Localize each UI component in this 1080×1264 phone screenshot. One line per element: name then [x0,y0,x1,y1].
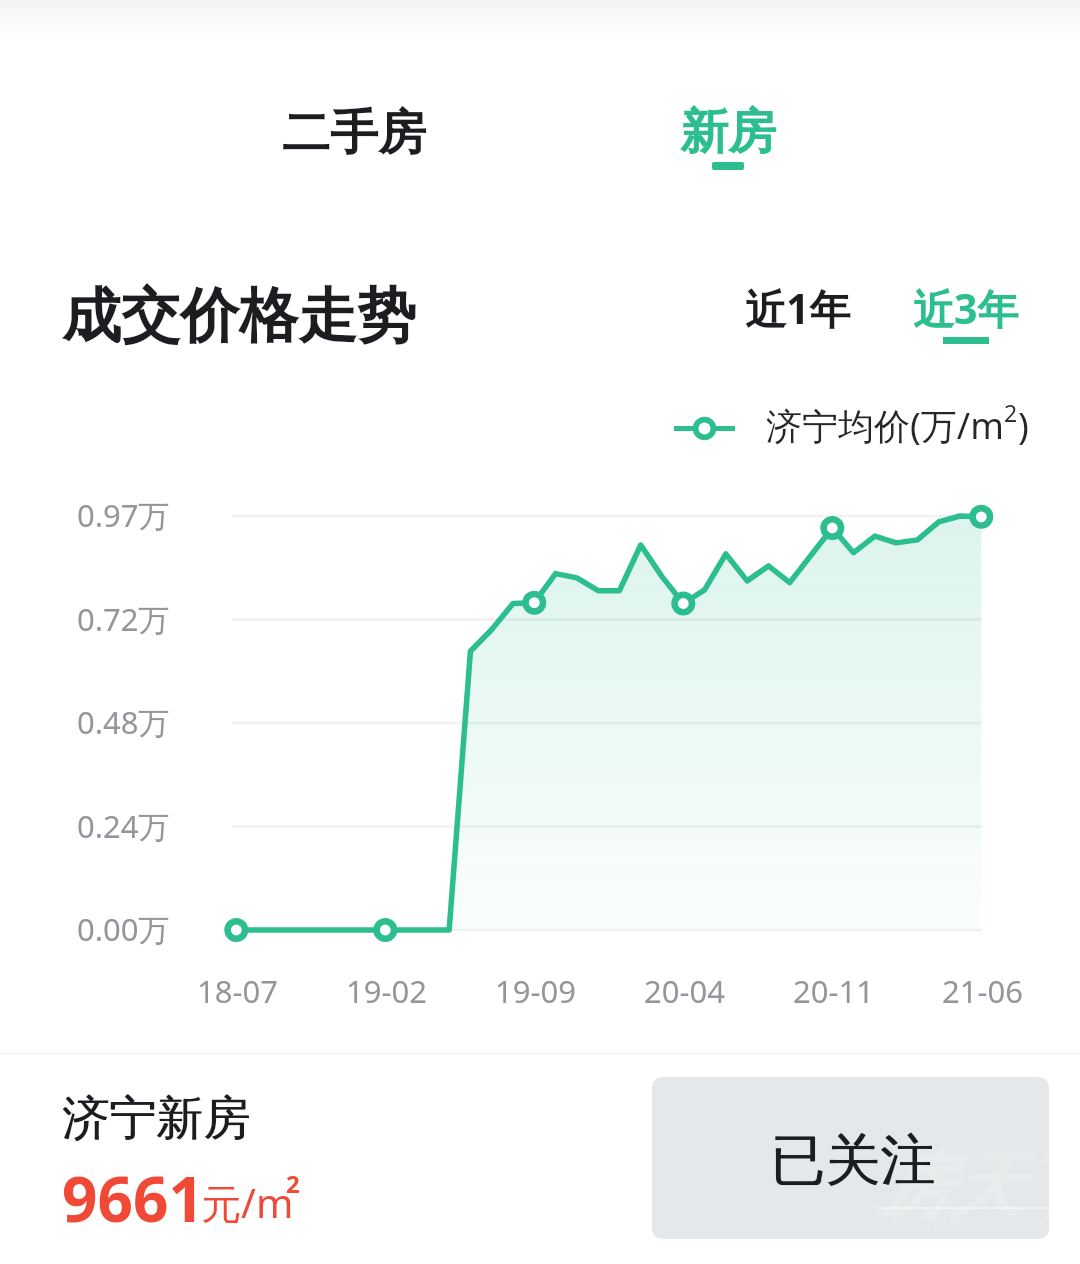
staticText: 济宁均价(万/m [766,401,1004,450]
staticText: 已关注 [771,1126,936,1195]
staticText: 2 [1004,397,1018,428]
staticText: 济宁新房 [62,1089,250,1148]
other: 济宁均价 图例 [674,408,735,449]
staticText: 19-09 [495,970,576,1012]
staticText: 20-11 [793,970,874,1012]
staticText: 房天下论坛 [880,1143,1049,1231]
staticText: 0.72万 [77,598,170,640]
staticText: 0.48万 [77,701,170,743]
staticText: 20-04 [644,970,725,1012]
staticText: 9661 [62,1156,204,1240]
staticText: 19-02 [346,970,427,1012]
button[interactable]: 新房 [623,102,832,192]
staticText: 0.00万 [77,908,170,950]
staticText: 成交价格走势 [62,279,416,353]
button[interactable]: 近3年 [903,276,1029,350]
staticText: 新房 [680,102,776,162]
button[interactable]: 近1年 [735,276,861,346]
staticText: 0.97万 [77,494,170,536]
staticText: 2 [286,1167,300,1200]
staticText: 0.24万 [77,805,170,847]
staticText: 18-07 [197,970,278,1012]
staticText: 已关注 [770,1126,935,1195]
staticText: 元/m [201,1175,294,1230]
staticText: ) [1018,401,1029,450]
button[interactable]: 房天下论坛 [652,1077,1049,1239]
button[interactable]: 二手房 [249,97,458,169]
staticText: 济宁新房 [63,1089,251,1148]
staticText: 21-06 [942,970,1023,1012]
staticText: 二手房 [282,103,426,163]
staticText: 近3年 [913,280,1019,336]
staticText: 近1年 [745,280,851,336]
